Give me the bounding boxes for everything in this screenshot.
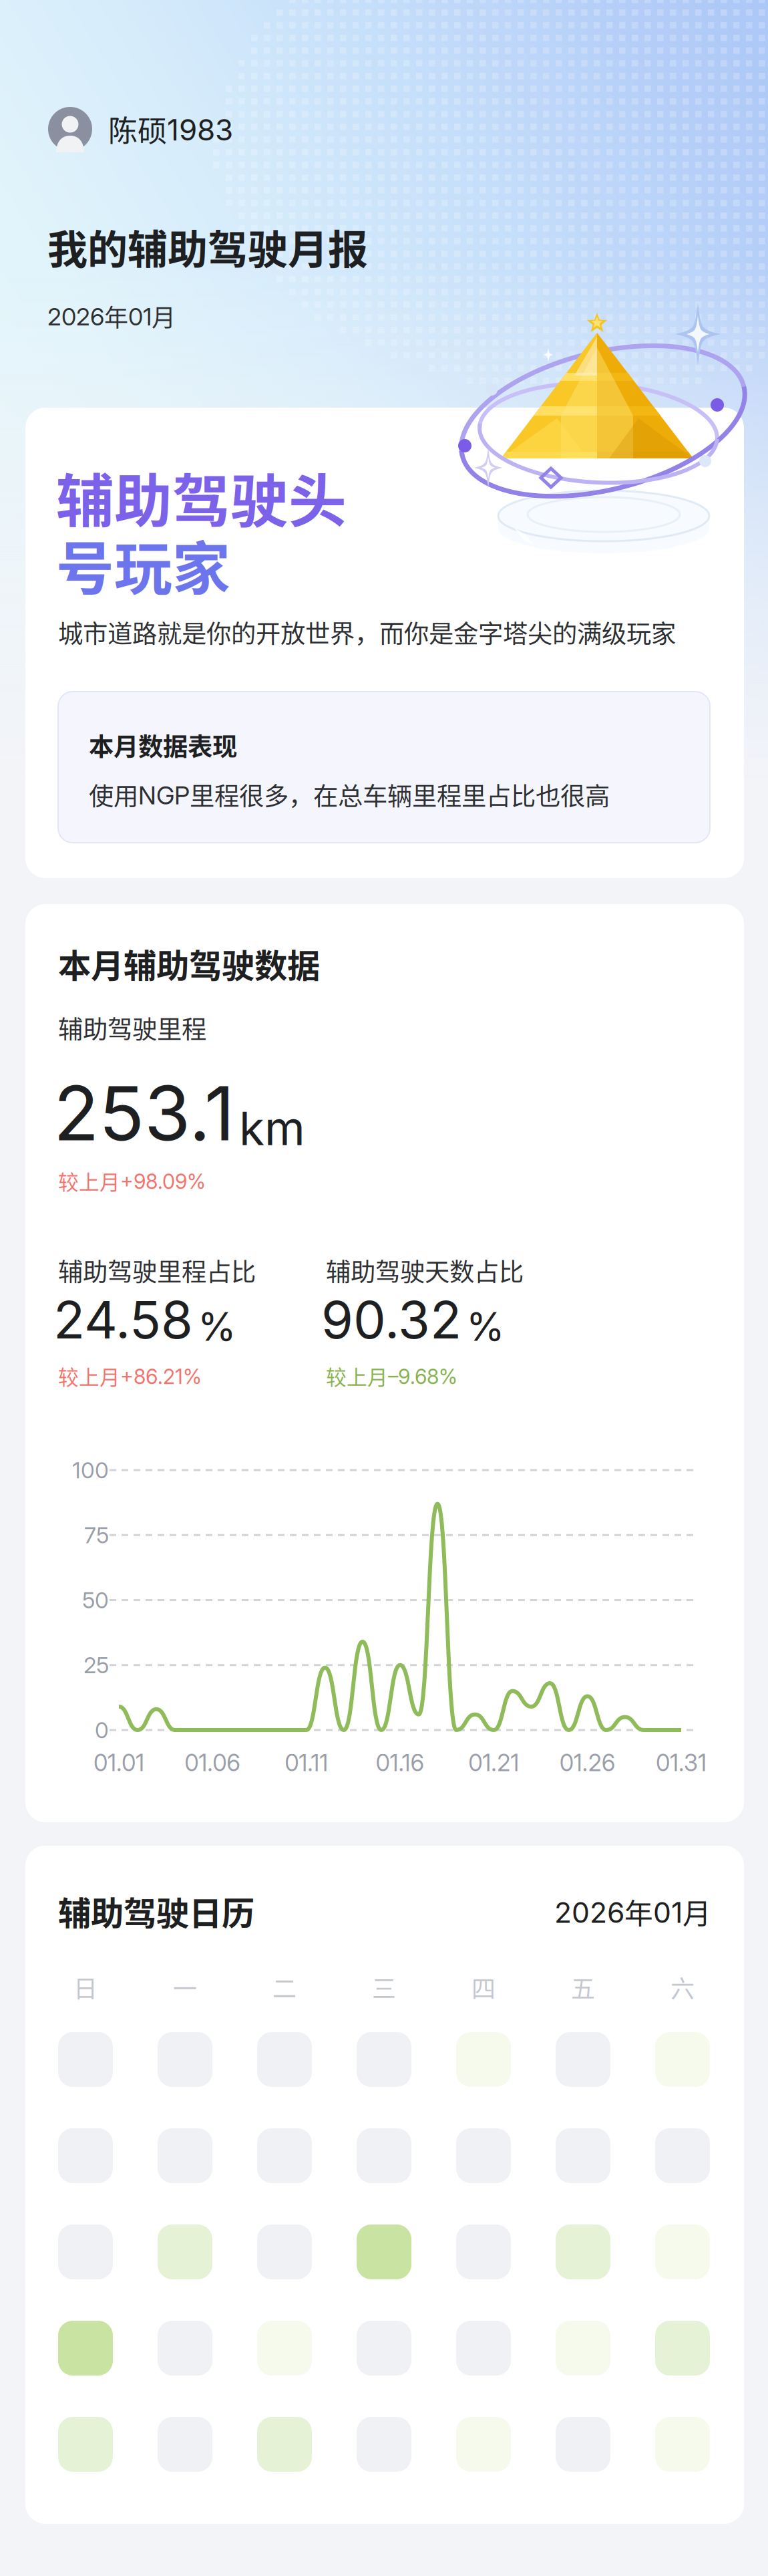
staticText: 75: [84, 1522, 109, 1549]
staticText: 100: [72, 1457, 109, 1484]
staticText: 90.32: [321, 1288, 461, 1351]
staticText: 六: [670, 1970, 695, 2005]
staticText: 辅助驾驶天数占比: [326, 1252, 524, 1288]
staticText: 0: [95, 1717, 109, 1743]
button[interactable]: 陈硕1983: [0, 0, 260, 167]
staticText: 01.26: [559, 1749, 616, 1777]
staticText: 253.1: [53, 1068, 235, 1158]
staticText: %: [198, 1303, 236, 1350]
staticText: 使用NGP里程很多，在总车辆里程里占比也很高: [89, 777, 610, 813]
staticText: 三: [372, 1970, 396, 2005]
staticText: 较上月–9.68%: [326, 1361, 457, 1391]
staticText: 01.31: [656, 1749, 707, 1777]
staticText: 01.11: [285, 1749, 328, 1777]
staticText: 城市道路就是你的开放世界，而你是金字塔尖的满级玩家: [58, 614, 676, 650]
staticText: 24.58: [53, 1288, 193, 1351]
staticText: 一: [173, 1970, 197, 2005]
staticText: 50: [82, 1587, 109, 1613]
staticText: 01.21: [468, 1749, 519, 1777]
staticText: 四: [471, 1970, 496, 2005]
staticText: 25: [83, 1652, 109, 1679]
staticText: 本月数据表现: [89, 727, 237, 763]
staticText: 辅助驾驶里程占比: [58, 1252, 256, 1288]
staticText: %: [466, 1303, 505, 1350]
staticText: 辅助驾驶里程: [58, 1010, 206, 1046]
staticText: 陈硕1983: [108, 108, 233, 150]
staticText: 较上月+98.09%: [58, 1166, 206, 1196]
staticText: 01.01: [93, 1749, 144, 1777]
staticText: 本月辅助驾驶数据: [58, 940, 320, 987]
staticText: 号玩家: [56, 523, 230, 606]
staticText: 我的辅助驾驶月报: [47, 218, 368, 276]
staticText: 较上月+86.21%: [58, 1361, 202, 1391]
staticText: 二: [272, 1970, 297, 2005]
staticText: 日: [73, 1970, 98, 2005]
staticText: 01.16: [376, 1749, 424, 1777]
staticText: 01.06: [185, 1749, 241, 1777]
staticText: 2026年01月: [554, 1891, 711, 1932]
staticText: 2026年01月: [47, 299, 176, 334]
staticText: km: [239, 1100, 305, 1156]
staticText: 五: [571, 1970, 595, 2005]
staticText: 辅助驾驶头: [56, 455, 347, 539]
staticText: 辅助驾驶日历: [58, 1887, 254, 1935]
